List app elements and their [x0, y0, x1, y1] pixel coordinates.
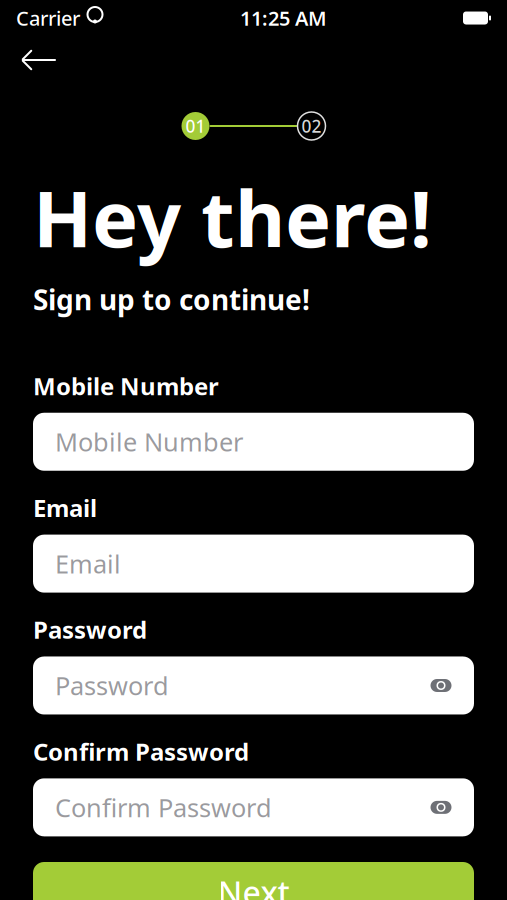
staticText: Email [33, 492, 97, 524]
button[interactable]: Mobile Number [33, 413, 474, 471]
staticText: Confirm Password [33, 735, 249, 767]
staticText: Mobile Number [33, 370, 219, 402]
staticText: Hey there! [33, 166, 432, 269]
staticText: 01 [185, 114, 205, 137]
staticText: 11:25 AM [240, 5, 327, 31]
staticText: Password [55, 669, 169, 702]
staticText: 02 [301, 114, 321, 137]
button[interactable]: Next [33, 862, 474, 900]
button[interactable]: Password [33, 656, 474, 714]
staticText: Mobile Number [55, 425, 243, 458]
staticText: Password [33, 614, 147, 645]
staticText: Sign up to continue! [33, 281, 310, 318]
staticText: Next [217, 871, 289, 900]
button[interactable]: Back [12, 38, 66, 82]
staticText: Confirm Password [55, 790, 272, 824]
button[interactable]: Confirm Password [33, 778, 474, 836]
button[interactable]: Email [33, 535, 474, 593]
staticText: Email [55, 547, 121, 580]
staticText: Carrier [16, 5, 80, 31]
